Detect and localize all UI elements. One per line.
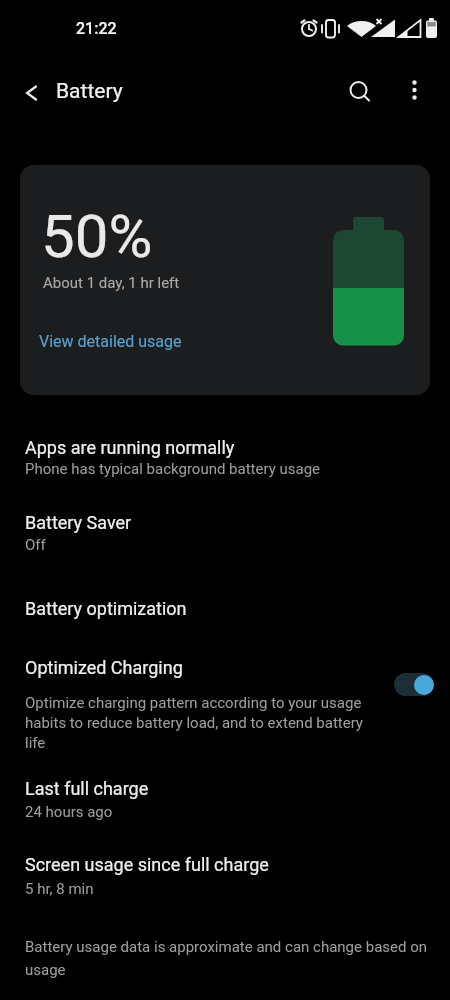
button[interactable]	[398, 73, 432, 107]
button[interactable]: Optimized Charging	[0, 648, 450, 760]
button[interactable]	[14, 74, 48, 108]
staticText: 50%	[41, 201, 153, 271]
staticText: Last full charge	[25, 778, 149, 799]
button[interactable]: Battery optimization	[0, 580, 450, 640]
staticText: Optimized Charging	[25, 657, 183, 678]
staticText: 24 hours ago	[25, 803, 113, 821]
button[interactable]: Last full charge	[0, 768, 450, 832]
staticText: Battery usage data is approximate and ca…	[25, 938, 428, 979]
staticText: About 1 day, 1 hr left	[43, 274, 180, 292]
staticText: Optimize charging pattern according to y…	[25, 694, 363, 751]
staticText: Battery optimization	[25, 598, 187, 619]
button[interactable]: View detailed usage	[27, 323, 207, 355]
staticText: Battery Saver	[25, 512, 132, 533]
button[interactable]	[342, 73, 376, 107]
button[interactable]: Battery Saver	[0, 500, 450, 565]
staticText: 21:22	[76, 19, 117, 38]
staticText: Phone has typical background battery usa…	[25, 460, 321, 478]
button[interactable]: Screen usage since full charge	[0, 845, 450, 909]
staticText: Battery	[56, 79, 123, 104]
staticText: Screen usage since full charge	[25, 854, 269, 875]
button[interactable]	[394, 673, 434, 696]
staticText: 5 hr, 8 min	[25, 880, 94, 898]
staticText: View detailed usage	[39, 332, 182, 351]
staticText: Apps are running normally	[25, 437, 235, 458]
button[interactable]: Apps are running normally	[0, 425, 450, 490]
staticText: Off	[25, 536, 46, 554]
